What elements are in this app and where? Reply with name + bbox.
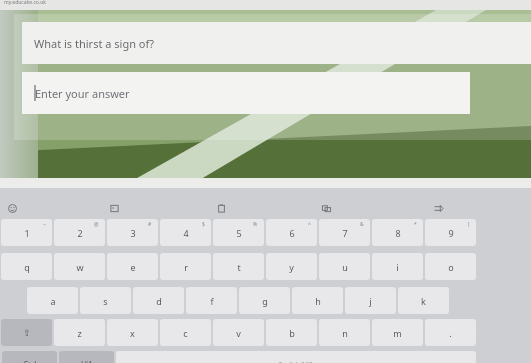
staticText: 9 — [448, 227, 454, 239]
button[interactable]: v — [213, 319, 264, 346]
staticText: b — [289, 327, 295, 339]
button[interactable]: Clipboard — [213, 200, 229, 216]
button[interactable]: q — [1, 253, 52, 280]
button[interactable]: k — [398, 287, 449, 314]
button[interactable]: Cursor control — [430, 200, 446, 216]
button[interactable]: w — [54, 253, 105, 280]
button[interactable]: Enter your answer — [22, 72, 470, 114]
button[interactable]: m — [372, 319, 423, 346]
button[interactable]: a — [27, 287, 78, 314]
button[interactable]: 1 — [1, 219, 52, 246]
staticText: my.educake.co.uk — [4, 0, 46, 6]
button[interactable]: ⇧ — [1, 319, 52, 346]
staticText: f — [210, 295, 214, 307]
button[interactable]: f — [186, 287, 237, 314]
button[interactable]: What is thirst a sign of? — [22, 22, 531, 64]
staticText: Enter your answer — [35, 86, 130, 101]
staticText: 8 — [395, 227, 401, 239]
staticText: What is thirst a sign of? — [34, 36, 155, 51]
staticText: c — [183, 327, 188, 339]
staticText: q — [24, 261, 30, 273]
button[interactable]: n — [319, 319, 370, 346]
button[interactable]: 7 — [319, 219, 370, 246]
staticText: * — [414, 221, 417, 228]
button[interactable]: 4 — [160, 219, 211, 246]
button[interactable]: 3 — [107, 219, 158, 246]
button[interactable]: h — [292, 287, 343, 314]
button[interactable]: r — [160, 253, 211, 280]
button[interactable]: i — [372, 253, 423, 280]
staticText: m — [393, 327, 402, 339]
staticText: Ctrl — [23, 359, 37, 363]
staticText: s — [103, 295, 108, 307]
button[interactable]: 9 — [425, 219, 476, 246]
staticText: y — [289, 261, 294, 273]
staticText: t — [237, 261, 241, 273]
button[interactable]: s — [80, 287, 131, 314]
button[interactable]: 6 — [266, 219, 317, 246]
staticText: 2 — [77, 227, 83, 239]
staticText: ^ — [308, 221, 311, 228]
button[interactable]: 8 — [372, 219, 423, 246]
button[interactable]: Stickers — [106, 200, 122, 216]
staticText: h — [315, 295, 321, 307]
button[interactable]: !#1 — [59, 351, 114, 363]
button[interactable]: o — [425, 253, 476, 280]
button[interactable]: g — [239, 287, 290, 314]
staticText: z — [77, 327, 82, 339]
button[interactable]: b — [266, 319, 317, 346]
staticText: !#1 — [81, 359, 93, 363]
staticText: 5 — [236, 227, 242, 239]
button[interactable]: x — [107, 319, 158, 346]
staticText: $ — [202, 221, 205, 228]
staticText: ⇧ — [23, 328, 31, 338]
button[interactable]: . — [425, 319, 476, 346]
button[interactable]: d — [133, 287, 184, 314]
button[interactable]: e — [107, 253, 158, 280]
staticText: v — [236, 327, 241, 339]
button[interactable]: c — [160, 319, 211, 346]
staticText: a — [50, 295, 56, 307]
button[interactable]: j — [345, 287, 396, 314]
staticText: k — [421, 295, 426, 307]
staticText: o — [448, 261, 454, 273]
staticText: e — [130, 261, 136, 273]
staticText: @ — [94, 221, 99, 228]
staticText: 1 — [24, 227, 30, 239]
staticText: j — [369, 295, 372, 307]
button[interactable]: Translate — [318, 200, 334, 216]
button[interactable]: y — [266, 253, 317, 280]
staticText: 3 — [130, 227, 136, 239]
button[interactable]: Ctrl — [2, 351, 57, 363]
button[interactable]: u — [319, 253, 370, 280]
staticText: d — [156, 295, 162, 307]
staticText: n — [342, 327, 348, 339]
staticText: English (UK) — [279, 360, 313, 363]
staticText: x — [130, 327, 135, 339]
staticText: % — [253, 221, 258, 228]
button[interactable]: z — [54, 319, 105, 346]
staticText: 7 — [342, 227, 348, 239]
staticText: i — [396, 261, 399, 273]
staticText: . — [449, 327, 452, 339]
button[interactable]: 5 — [213, 219, 264, 246]
button[interactable]: 2 — [54, 219, 105, 246]
staticText: r — [184, 261, 188, 273]
staticText: w — [76, 261, 84, 273]
staticText: g — [262, 295, 268, 307]
staticText: 4 — [183, 227, 189, 239]
staticText: u — [342, 261, 348, 273]
staticText: & — [360, 221, 364, 228]
staticText: 6 — [289, 227, 295, 239]
button[interactable]: Emoji — [4, 200, 20, 216]
staticText: ~ — [43, 221, 46, 228]
button[interactable]: t — [213, 253, 264, 280]
staticText: # — [148, 221, 152, 228]
staticText: ( — [468, 221, 470, 228]
